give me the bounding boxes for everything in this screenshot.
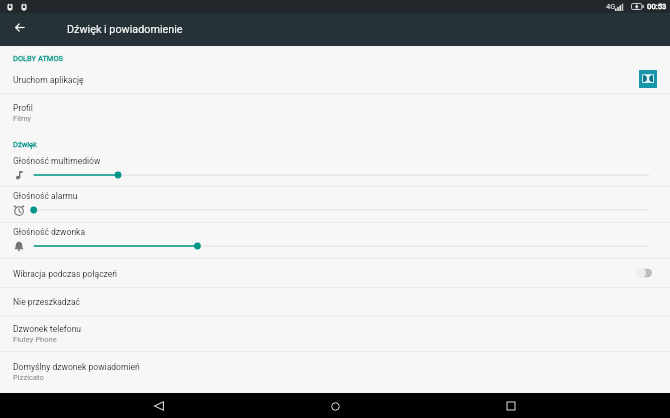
button[interactable]: Uruchom aplikację (0, 67, 670, 92)
button[interactable]: Głośność dzwonka (0, 224, 670, 256)
button[interactable]: Ekran główny (323, 394, 347, 418)
staticText: Głośność multimediów (13, 156, 101, 166)
button[interactable]: Wstecz (7, 18, 31, 42)
staticText: Głośność dzwonka (13, 227, 86, 237)
button[interactable]: Domyślny dzwonek powiadomień (0, 358, 670, 388)
staticText: Dzwonek telefonu (13, 324, 82, 334)
staticText: Głośność alarmu (13, 191, 78, 201)
staticText: Filmy (13, 114, 32, 123)
button[interactable]: Głośność alarmu (0, 188, 670, 220)
staticText: Profil (13, 103, 33, 113)
staticText: Uruchom aplikację (13, 75, 84, 85)
button[interactable]: Wstecz (147, 394, 171, 418)
staticText: DOLBY ATMOS (13, 54, 64, 63)
staticText: 00:53 (647, 2, 667, 11)
staticText: Flutey Phone (13, 335, 57, 344)
button[interactable]: Ostatnie (499, 394, 523, 418)
staticText: Nie przeszkadzać (13, 297, 81, 307)
button[interactable]: Profil (0, 99, 670, 129)
staticText: Wibracja podczas połączeń (13, 269, 118, 279)
button[interactable]: Nie przeszkadzać (0, 289, 670, 315)
button[interactable]: Wibracja podczas połączeń (632, 266, 658, 280)
button[interactable]: Dolby Atmos (639, 70, 657, 88)
staticText: Pizzicato (13, 373, 44, 382)
staticText: Dźwięk i powiadomienie (67, 23, 183, 36)
button[interactable]: Dzwonek telefonu (0, 320, 670, 350)
staticText: Domyślny dzwonek powiadomień (13, 362, 140, 372)
button[interactable]: Głośność multimediów (0, 153, 670, 185)
button[interactable]: Wibracja podczas połączeń (0, 260, 670, 287)
staticText: Dźwięk (13, 140, 37, 149)
staticText: 4G (606, 2, 616, 11)
